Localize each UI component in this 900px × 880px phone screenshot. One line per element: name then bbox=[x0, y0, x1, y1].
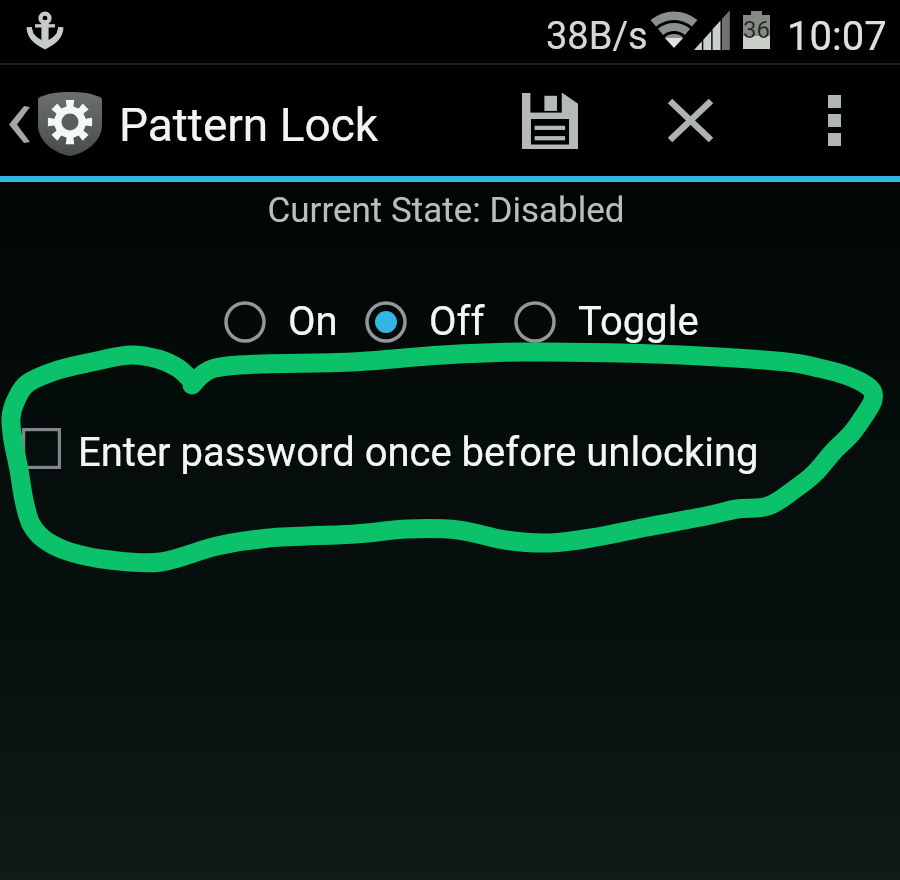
staticText: 10:07 bbox=[787, 13, 887, 60]
button[interactable]: Save bbox=[492, 65, 608, 176]
staticText: Toggle bbox=[578, 298, 699, 345]
button[interactable]: Enter password once before unlocking bbox=[0, 424, 900, 480]
staticText: Enter password once before unlocking bbox=[78, 429, 759, 476]
staticText: On bbox=[288, 298, 338, 345]
button[interactable]: Navigate up bbox=[0, 65, 110, 176]
button[interactable]: Toggle bbox=[512, 298, 699, 345]
staticText: Pattern Lock bbox=[119, 98, 379, 152]
staticText: Off bbox=[429, 298, 485, 345]
button[interactable]: Off bbox=[363, 298, 485, 345]
staticText: Current State: Disabled bbox=[0, 190, 896, 231]
staticText: 36 bbox=[743, 16, 770, 44]
button[interactable]: On bbox=[222, 298, 338, 345]
staticText: 38B/s bbox=[546, 14, 648, 59]
button[interactable]: Close bbox=[634, 65, 746, 176]
button[interactable]: More options bbox=[780, 65, 890, 176]
